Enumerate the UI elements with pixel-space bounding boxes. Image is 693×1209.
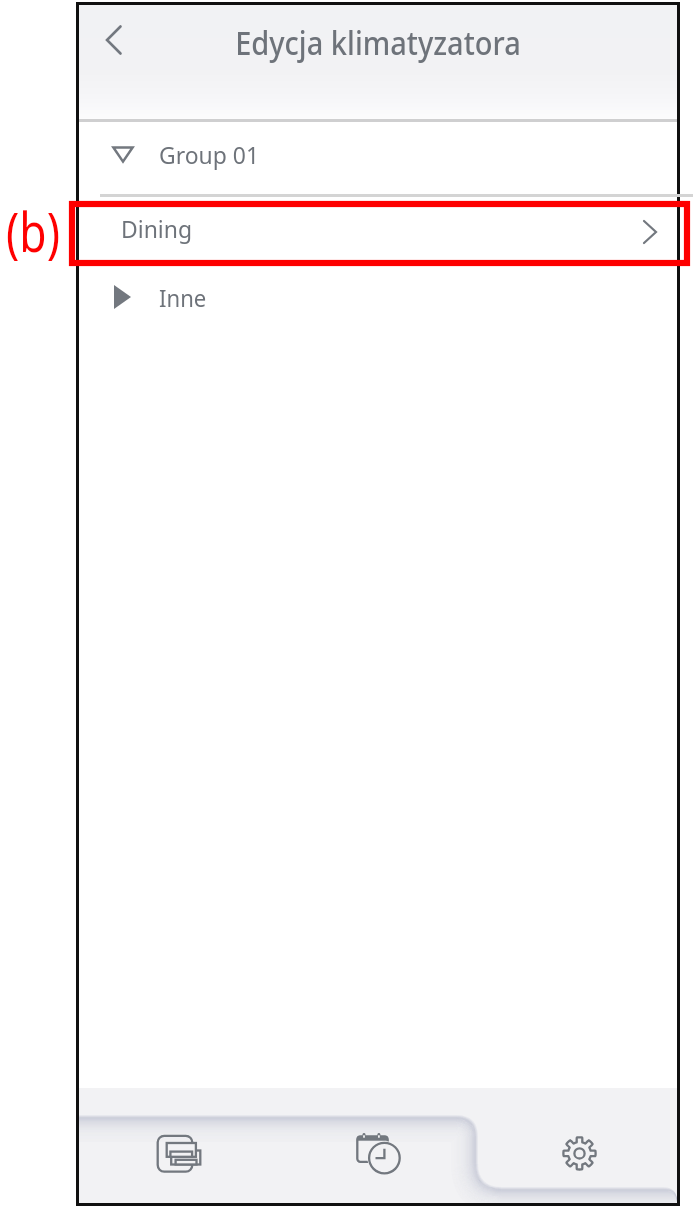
staticText: Group 01 [159, 138, 259, 171]
button[interactable]: Inne [79, 266, 677, 338]
staticText: (b) [6, 193, 60, 269]
button[interactable]: Dining [79, 193, 677, 266]
staticText: Inne [159, 281, 207, 314]
button[interactable]: Air conditioners [79, 1088, 279, 1203]
staticText: Dining [121, 212, 193, 245]
button[interactable]: Schedule [279, 1088, 478, 1203]
button[interactable]: Group 01 [79, 121, 677, 193]
button[interactable]: Settings [478, 1088, 677, 1203]
button[interactable]: Back [93, 17, 149, 73]
staticText: Edycja klimatyzatora [235, 20, 521, 64]
